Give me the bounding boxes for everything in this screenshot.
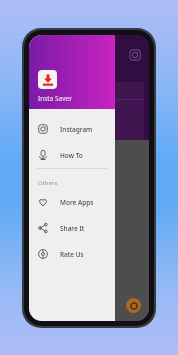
button[interactable]: More Apps <box>29 189 115 215</box>
staticText: Rate Us <box>60 250 84 259</box>
button[interactable]: Rate Us <box>29 241 115 267</box>
button[interactable]: Share It <box>29 215 115 241</box>
staticText: How To <box>60 151 83 160</box>
staticText: Others <box>38 179 58 187</box>
button[interactable]: How To <box>29 142 115 168</box>
staticText: More Apps <box>60 198 94 207</box>
button[interactable]: Instagram <box>29 116 115 142</box>
staticText: Share It <box>60 224 85 233</box>
staticText: Insta Saver <box>38 94 72 103</box>
button[interactable]: Instagram <box>129 49 141 61</box>
button[interactable]: Add <box>126 298 141 313</box>
staticText: Instagram <box>60 125 93 134</box>
